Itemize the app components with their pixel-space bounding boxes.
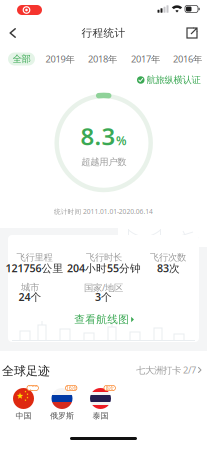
staticText: 全部 <box>12 53 30 65</box>
staticText: 统计时间 2011.01.01-2020.06.14 <box>54 207 153 216</box>
staticText: 查看航线图 <box>74 313 129 326</box>
staticText: 121756公里 <box>5 261 63 275</box>
staticText: 3个 <box>95 290 112 304</box>
staticText: 中国 <box>15 411 31 421</box>
staticText: 飞行时长 <box>86 252 122 263</box>
staticText: 2016年 <box>173 53 202 65</box>
staticText: 超越用户数 <box>81 156 126 168</box>
button[interactable]: 2016年 <box>171 51 204 67</box>
staticText: 83次 <box>157 261 180 275</box>
staticText: 8.3 <box>80 120 115 152</box>
staticText: 行程统计 <box>81 26 125 39</box>
button[interactable]: 分享 <box>181 22 202 43</box>
button[interactable]: 返回 <box>3 22 23 44</box>
staticText: 俄罗斯 <box>50 411 74 421</box>
staticText: 8次 <box>106 384 114 392</box>
staticText: 航旅纵横认证 <box>146 74 200 86</box>
staticText: 泰国 <box>92 411 108 421</box>
staticText: 24个 <box>18 290 41 304</box>
staticText: 全球足迹 <box>2 364 50 378</box>
button[interactable]: 查看航线图 <box>71 310 138 329</box>
staticText: 16次 <box>66 384 77 392</box>
staticText: % <box>116 133 127 149</box>
button[interactable]: 8次 <box>87 374 125 424</box>
staticText: 2018年 <box>88 53 117 65</box>
staticText: 国家/地区 <box>84 281 123 294</box>
staticText: 飞行里程 <box>16 252 52 263</box>
button[interactable]: 2017年 <box>129 51 162 67</box>
button[interactable]: 16次 <box>49 374 87 424</box>
staticText: 七大洲打卡 2/7 <box>136 364 196 376</box>
button[interactable]: 2018年 <box>86 51 119 67</box>
staticText: 204小时55分钟 <box>67 261 141 275</box>
button[interactable]: 105次 <box>10 374 48 424</box>
button[interactable]: 全部 <box>8 52 35 65</box>
staticText: 2019年 <box>45 53 74 65</box>
staticText: 城市 <box>21 282 39 293</box>
staticText: 飞行次数 <box>150 252 186 263</box>
staticText: 2017年 <box>131 53 160 65</box>
button[interactable]: 七大洲打卡 2/7 <box>136 364 202 376</box>
staticText: 105次 <box>28 381 37 395</box>
button[interactable]: 2019年 <box>43 51 76 67</box>
